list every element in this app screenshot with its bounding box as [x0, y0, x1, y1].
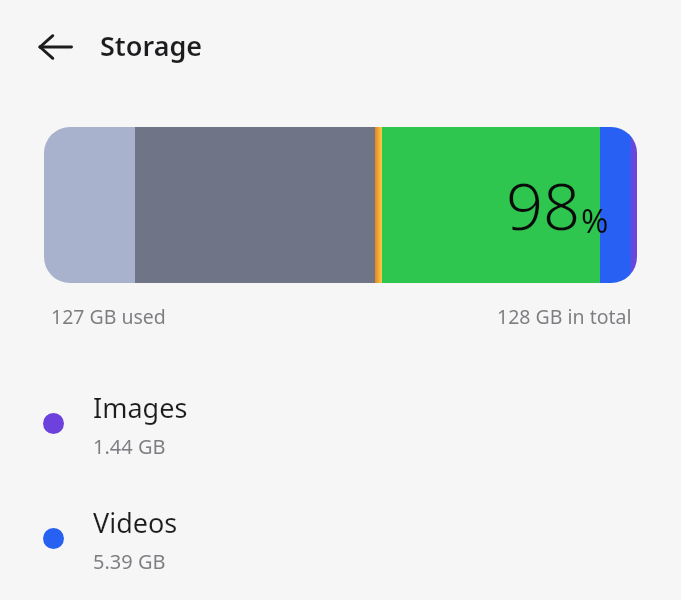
- button[interactable]: [28, 28, 86, 66]
- button[interactable]: Images: [42, 389, 602, 460]
- staticText: 98: [506, 161, 581, 250]
- staticText: Videos: [93, 504, 178, 541]
- staticText: 5.39 GB: [93, 548, 166, 575]
- staticText: 1.44 GB: [93, 433, 166, 460]
- staticText: 128 GB in total: [497, 303, 632, 330]
- button[interactable]: Videos: [42, 504, 602, 575]
- staticText: Storage: [100, 27, 203, 64]
- staticText: 127 GB used: [51, 303, 166, 330]
- staticText: Images: [93, 389, 188, 426]
- staticText: %: [581, 198, 609, 243]
